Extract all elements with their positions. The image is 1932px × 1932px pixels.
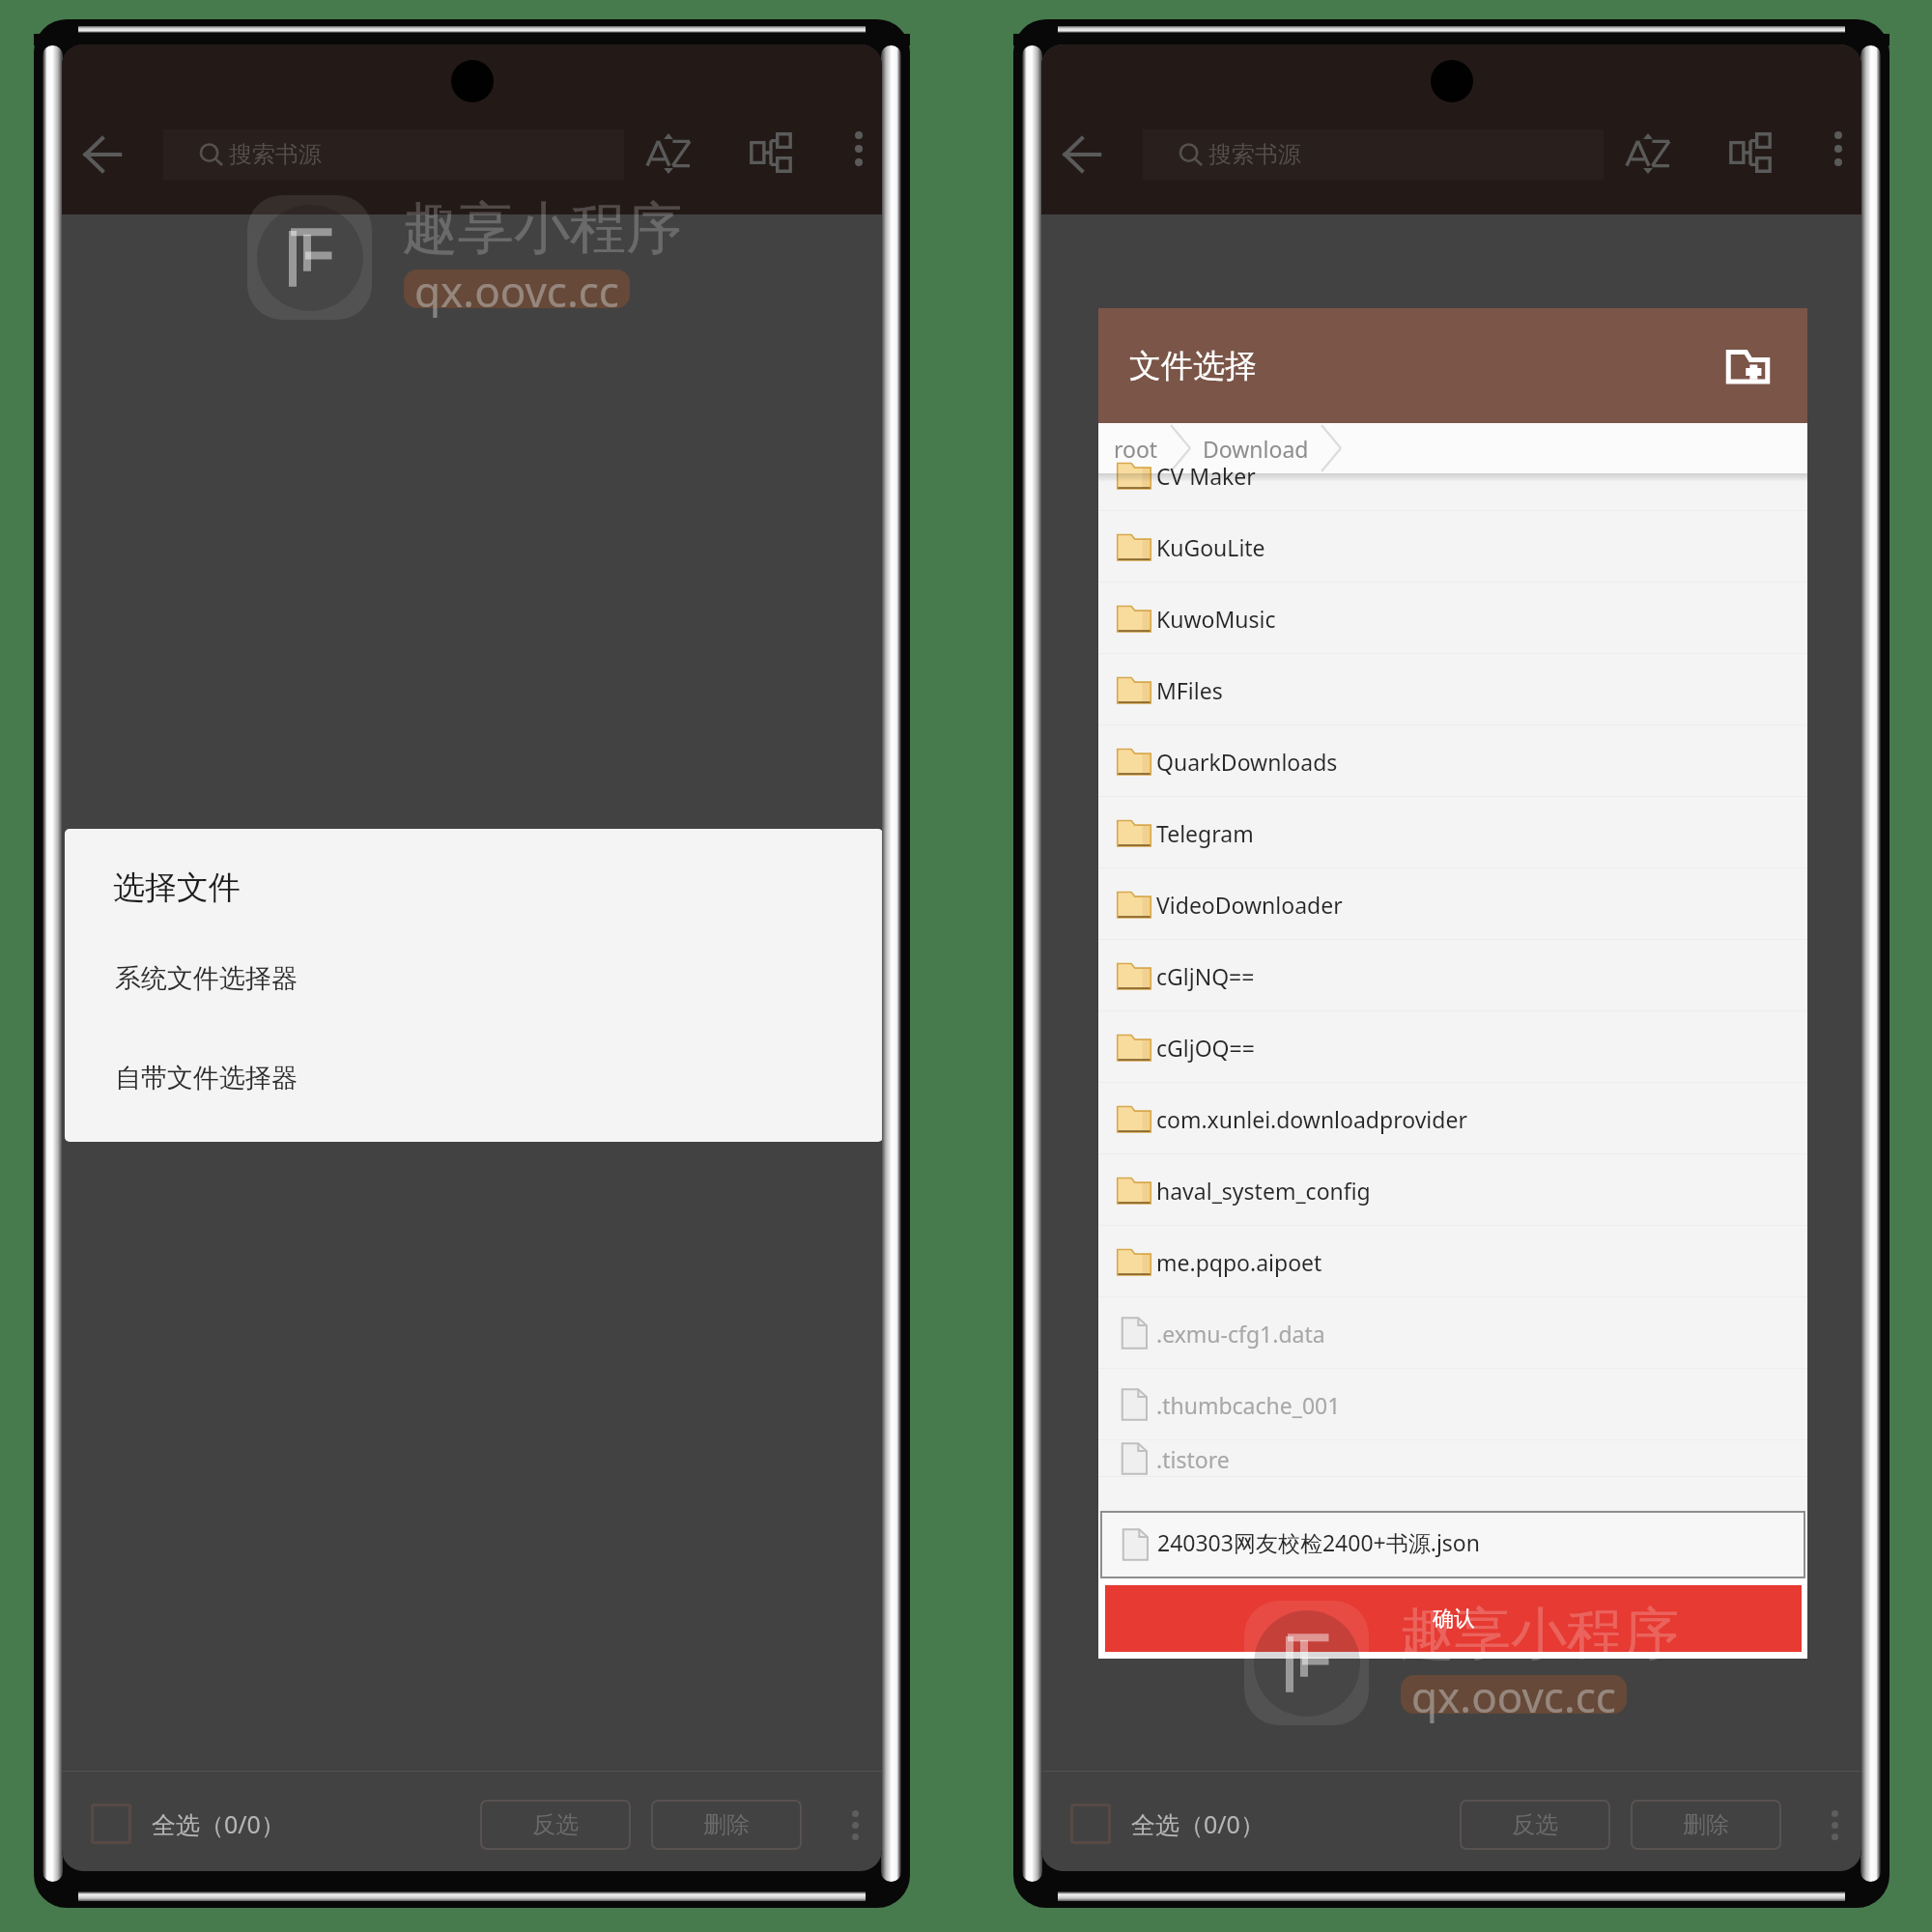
staticText: 系统文件选择器 [115,962,298,995]
staticText: 全选（0/0） [1131,1807,1264,1840]
button[interactable]: QuarkDownloads [1098,725,1807,797]
button[interactable]: 240303网友校检2400+书源.json [1100,1511,1805,1578]
button[interactable]: 全选（0/0） [91,1803,285,1845]
button[interactable]: me.pqpo.aipoet [1098,1226,1807,1297]
button[interactable]: Back [1045,118,1119,191]
button[interactable]: cGljNQ== [1098,940,1807,1011]
button[interactable]: 反选 [480,1800,631,1850]
staticText: QuarkDownloads [1156,747,1338,777]
staticText: 自带文件选择器 [115,1062,298,1094]
button[interactable]: .exmu-cfg1.data [1098,1297,1807,1369]
staticText: 文件选择 [1129,346,1257,386]
button[interactable]: .thumbcache_001 [1098,1369,1807,1440]
button[interactable]: 反选 [1460,1800,1610,1850]
staticText: 趣享小程序 [402,193,682,264]
button[interactable]: VideoDownloader [1098,868,1807,940]
staticText: 趣享小程序 [1399,1599,1679,1669]
staticText: CV Maker [1156,461,1256,491]
staticText: qx.oovc.cc [414,262,619,320]
button[interactable]: 确认 [1105,1585,1802,1652]
staticText: Telegram [1156,818,1254,848]
staticText: 确认 [1433,1605,1475,1633]
staticText: cGljOQ== [1156,1033,1255,1063]
button[interactable]: More options [832,122,882,176]
staticText: 删除 [703,1810,750,1839]
button[interactable]: MFiles [1098,654,1807,725]
button[interactable]: 删除 [651,1800,802,1850]
staticText: root [1114,434,1158,464]
staticText: KuGouLite [1156,532,1265,562]
button[interactable]: Group [732,114,810,191]
button[interactable]: Back [66,118,139,191]
staticText: Download [1203,434,1309,464]
button[interactable]: 系统文件选择器 [65,933,882,1024]
button[interactable]: haval_system_config [1098,1154,1807,1226]
button[interactable]: 自带文件选择器 [65,1033,882,1123]
button[interactable]: 搜索书源 [1143,129,1604,180]
staticText: 删除 [1683,1810,1729,1839]
staticText: .exmu-cfg1.data [1156,1319,1325,1349]
staticText: 选择文件 [113,867,241,908]
staticText: 反选 [1512,1810,1558,1839]
staticText: com.xunlei.downloadprovider [1156,1104,1467,1134]
staticText: haval_system_config [1156,1176,1371,1206]
button[interactable]: More options [1809,1800,1860,1850]
staticText: cGljNQ== [1156,961,1255,991]
staticText: .thumbcache_001 [1156,1390,1341,1420]
button[interactable]: 搜索书源 [163,129,624,180]
button[interactable]: New folder [1720,339,1775,393]
button[interactable]: More options [1811,122,1861,176]
button[interactable]: CV Maker [1098,440,1807,511]
button[interactable]: .tistore [1098,1440,1807,1477]
button[interactable]: KuwoMusic [1098,582,1807,654]
button[interactable]: KuGouLite [1098,511,1807,582]
staticText: 搜索书源 [1208,140,1301,169]
button[interactable]: 删除 [1631,1800,1781,1850]
staticText: KuwoMusic [1156,604,1276,634]
staticText: 搜索书源 [229,140,322,169]
button[interactable]: Sort [628,115,709,192]
button[interactable]: 全选（0/0） [1070,1803,1264,1845]
staticText: VideoDownloader [1156,890,1343,920]
button[interactable]: Telegram [1098,797,1807,868]
staticText: 240303网友校检2400+书源.json [1157,1527,1480,1557]
button[interactable]: com.xunlei.downloadprovider [1098,1083,1807,1154]
button[interactable]: More options [830,1800,880,1850]
staticText: MFiles [1156,675,1223,705]
staticText: me.pqpo.aipoet [1156,1247,1322,1277]
button[interactable]: cGljOQ== [1098,1011,1807,1083]
button[interactable]: Sort [1607,115,1689,192]
staticText: 全选（0/0） [152,1807,285,1840]
staticText: qx.oovc.cc [1411,1667,1616,1725]
staticText: .tistore [1156,1444,1230,1474]
staticText: 反选 [532,1810,579,1839]
button[interactable]: Group [1712,114,1789,191]
